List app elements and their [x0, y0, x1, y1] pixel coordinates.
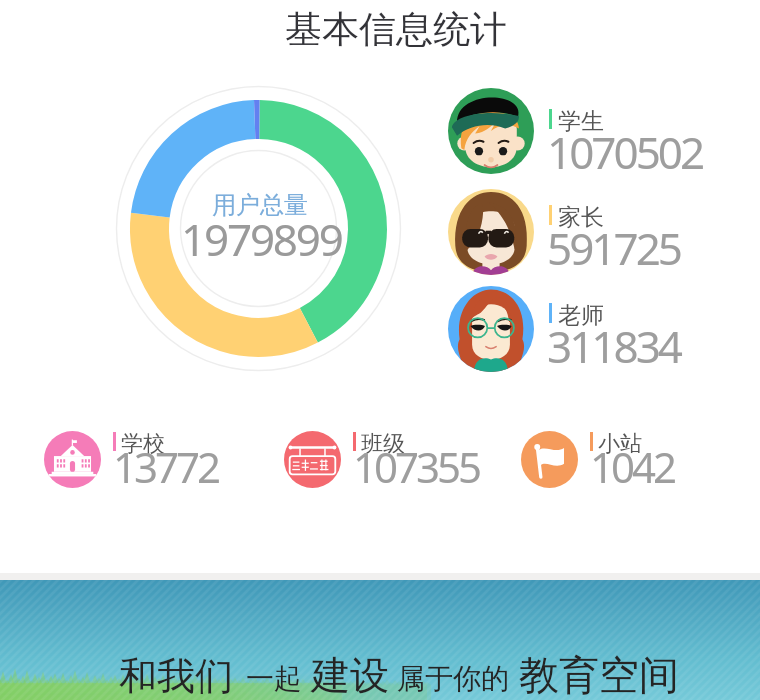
button[interactable]: 学生 — [448, 88, 698, 176]
staticText: 1979899 — [181, 209, 342, 269]
staticText: 老师 — [558, 301, 604, 330]
staticText: 和我们 — [119, 652, 233, 700]
button[interactable]: 小站 — [521, 430, 721, 488]
staticText: 1070502 — [547, 122, 703, 182]
button[interactable]: 用户总量 1979899 占比图 — [116, 86, 401, 371]
staticText: 13772 — [113, 438, 219, 495]
staticText: 学校 — [121, 430, 165, 458]
staticText: 班级 — [361, 430, 405, 458]
staticText: 属于你的 — [397, 661, 509, 696]
button[interactable]: 学校 — [44, 430, 244, 488]
staticText: 基本信息统计 — [285, 6, 507, 53]
staticText: 教育空间 — [519, 650, 679, 700]
staticText: 家长 — [558, 203, 604, 232]
button[interactable]: 班级 — [284, 430, 484, 488]
button[interactable]: 老师 — [448, 286, 698, 374]
button[interactable]: 家长 — [448, 189, 698, 277]
staticText: 建设 — [311, 651, 389, 700]
staticText: 311834 — [547, 316, 681, 376]
staticText: 用户总量 — [212, 190, 308, 220]
staticText: 591725 — [547, 218, 681, 278]
staticText: 小站 — [598, 430, 642, 458]
staticText: 一起 — [246, 661, 302, 696]
staticText: 学生 — [558, 107, 604, 136]
staticText: 1042 — [590, 438, 675, 495]
staticText: 107355 — [353, 438, 480, 495]
